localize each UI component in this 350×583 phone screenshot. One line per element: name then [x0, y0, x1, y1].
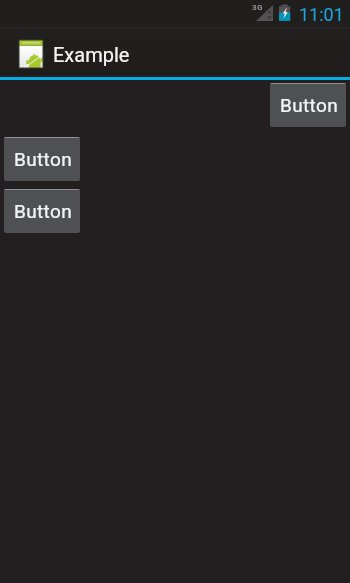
- other: Mobile signal strength: [256, 5, 273, 21]
- button[interactable]: Example: [0, 27, 140, 77]
- staticText: 3G: [252, 3, 263, 12]
- button[interactable]: Button: [270, 83, 346, 127]
- staticText: Button: [280, 94, 338, 116]
- button[interactable]: Button: [4, 137, 80, 181]
- staticText: Example: [53, 43, 130, 66]
- staticText: 11:01: [299, 4, 344, 25]
- staticText: Button: [14, 200, 72, 222]
- other: Battery charging: [279, 4, 291, 22]
- staticText: Button: [14, 148, 72, 170]
- button[interactable]: Button: [4, 189, 80, 233]
